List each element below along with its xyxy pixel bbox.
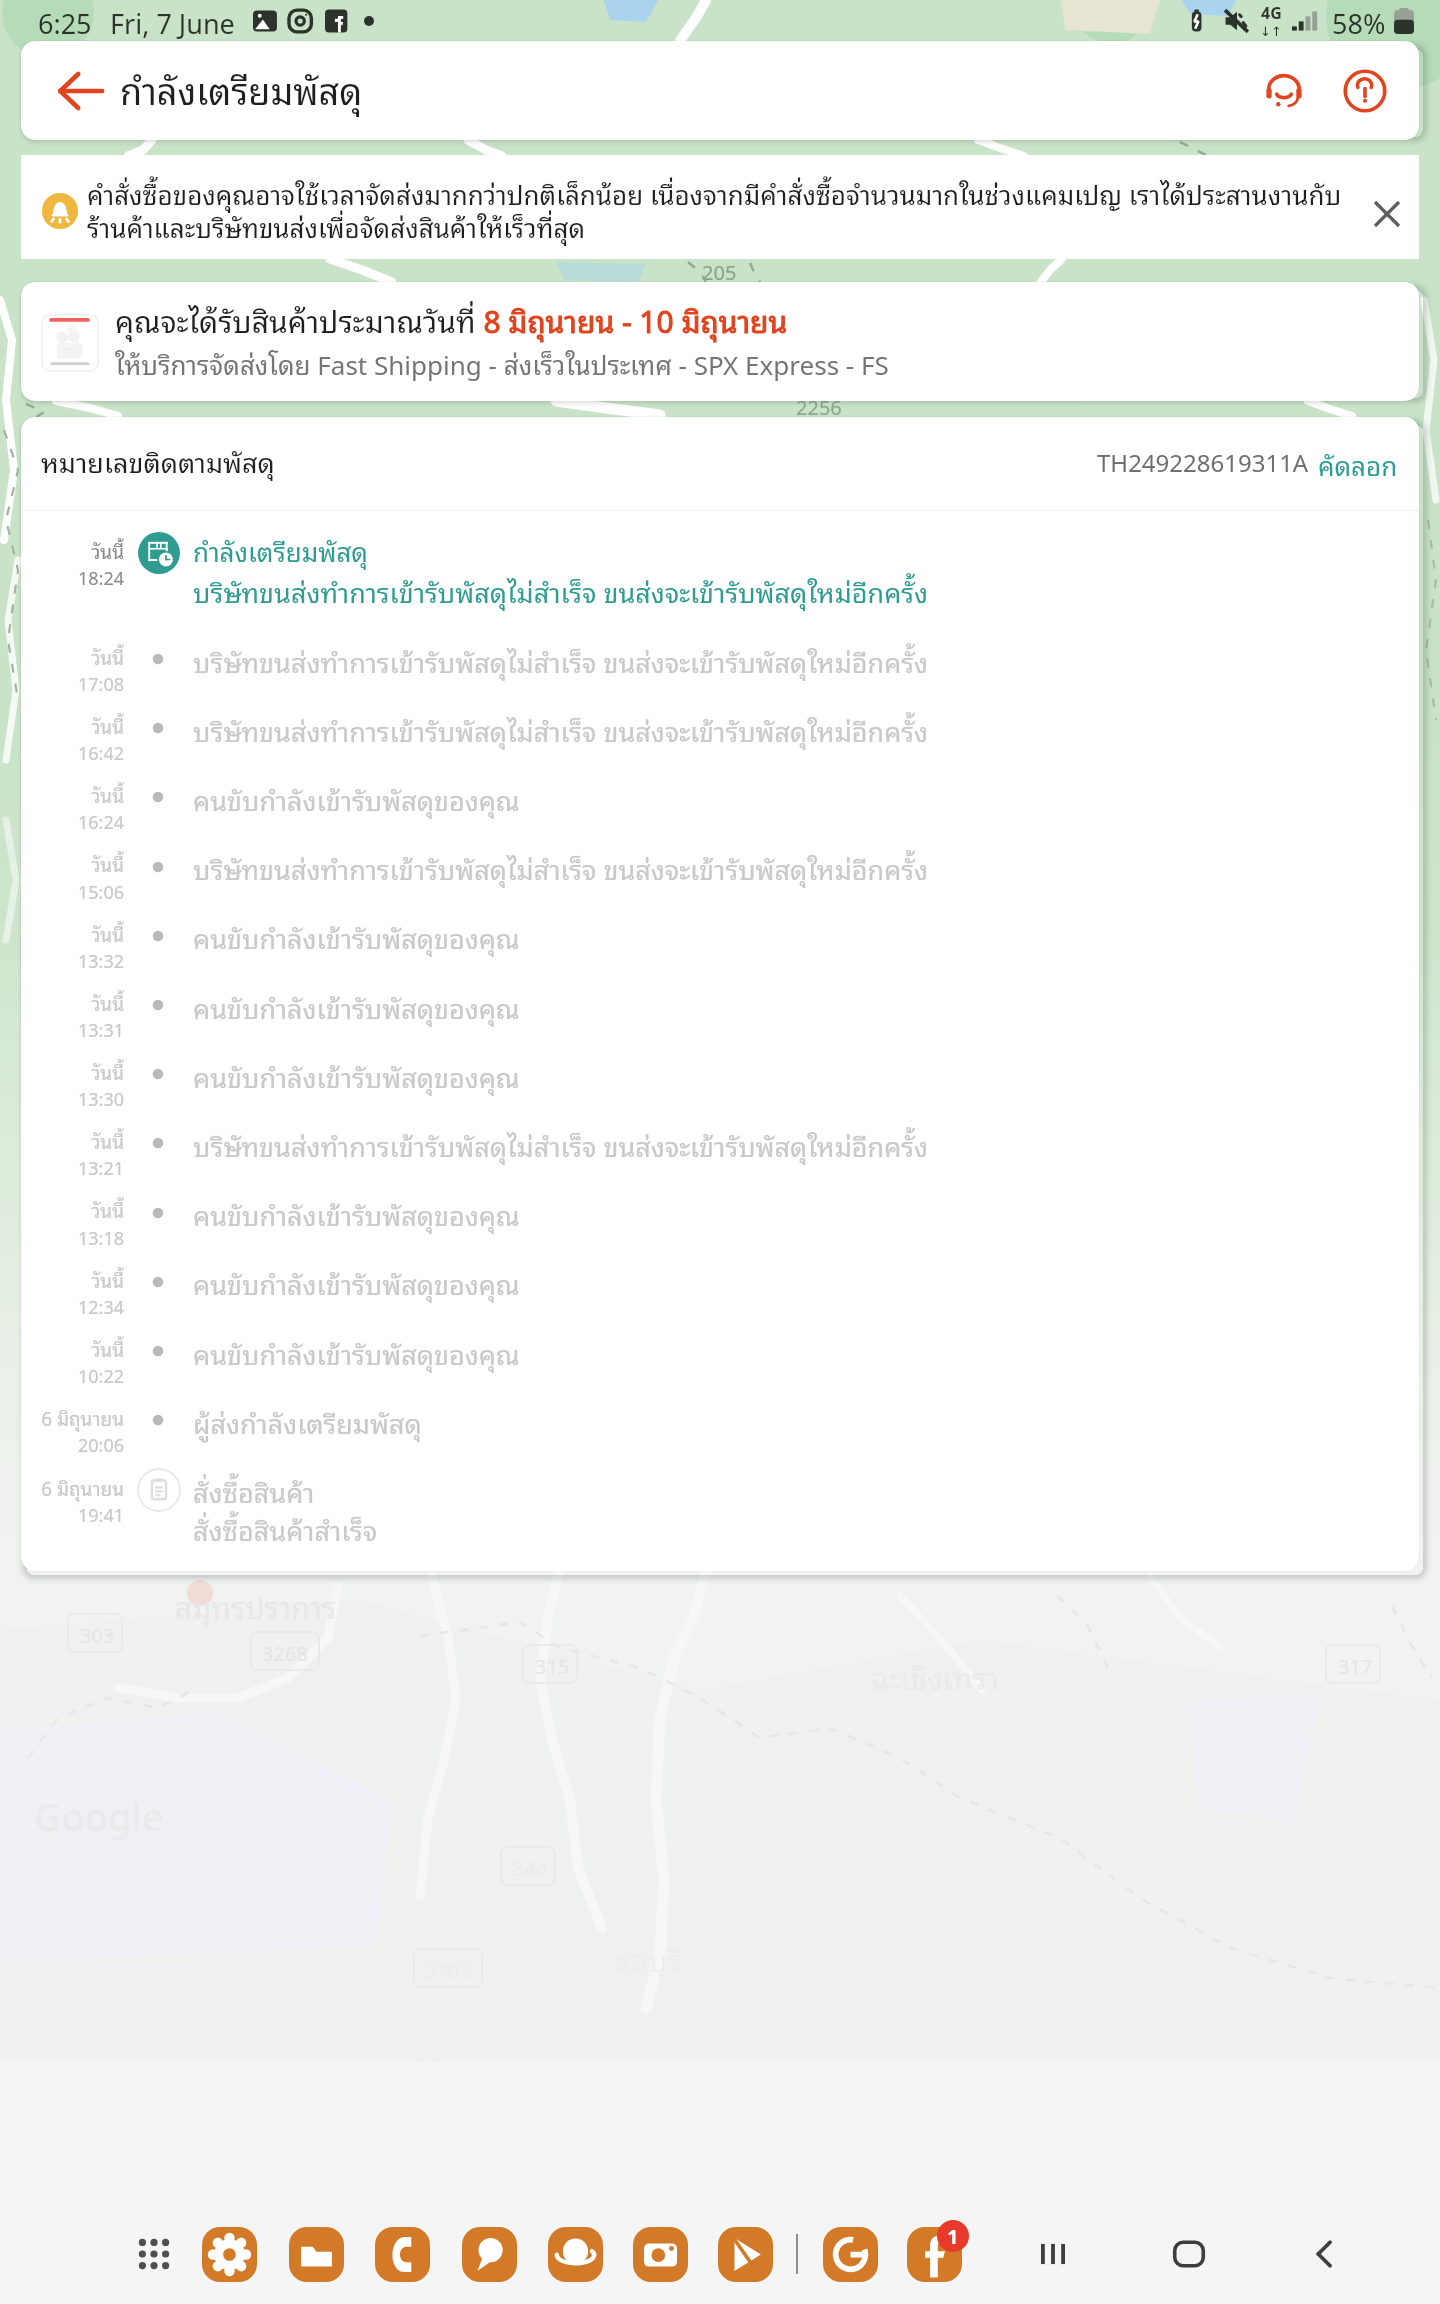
staticText: 6 มิถุนายน: [21, 1402, 124, 1432]
button[interactable]: App: [446, 2211, 532, 2297]
staticText: 1: [947, 2223, 959, 2250]
staticText: 58%: [1332, 0, 1386, 41]
staticText: 10:22: [21, 1360, 124, 1389]
staticText: 13:31: [21, 1014, 124, 1043]
button[interactable]: คัดลอก: [1308, 433, 1408, 495]
staticText: 317: [1338, 1649, 1373, 1681]
button[interactable]: App: [702, 2211, 788, 2297]
staticText: ให้บริการจัดส่งโดย Fast Shipping - ส่งเร…: [115, 342, 889, 384]
staticText: วันนี้: [21, 1125, 124, 1155]
staticText: 2256: [796, 390, 842, 422]
staticText: วันนี้: [21, 987, 124, 1017]
staticText: 19:41: [21, 1499, 124, 1528]
staticText: วันนี้: [21, 641, 124, 671]
button[interactable]: App: [359, 2211, 445, 2297]
staticText: วันนี้: [21, 918, 124, 948]
staticText: 15:06: [21, 876, 124, 905]
staticText: 13:21: [21, 1152, 124, 1181]
staticText: คนขับกำลังเข้ารับพัสดุของคุณ: [193, 1261, 520, 1304]
staticText: 3268: [262, 1636, 308, 1668]
button[interactable]: Recent apps: [1011, 2212, 1095, 2296]
button[interactable]: App: [617, 2211, 703, 2297]
button[interactable]: Back: [1283, 2212, 1367, 2296]
staticText: 20:06: [21, 1429, 124, 1458]
staticText: วันนี้: [21, 779, 124, 809]
staticText: 12:34: [21, 1291, 124, 1320]
staticText: กำลังเตรียมพัสดุ: [193, 529, 368, 571]
staticText: สั่งซื้อสินค้าสำเร็จ: [193, 1507, 378, 1550]
staticText: วันนี้: [21, 535, 124, 565]
staticText: 18:24: [21, 562, 124, 591]
staticText: บริษัทขนส่งทำการเข้ารับพัสดุไม่สำเร็จ ขน…: [193, 639, 929, 682]
staticText: บริษัทขนส่งทำการเข้ารับพัสดุไม่สำเร็จ ขน…: [193, 708, 929, 751]
staticText: คนขับกำลังเข้ารับพัสดุของคุณ: [193, 1331, 520, 1374]
staticText: คนขับกำลังเข้ารับพัสดุของคุณ: [193, 915, 520, 958]
staticText: 16:42: [21, 737, 124, 766]
staticText: วันนี้: [21, 1264, 124, 1294]
button[interactable]: คำสั่งซื้อของคุณอาจใช้เวลาจัดส่งมากกว่าป…: [21, 155, 1419, 259]
staticText: คัดลอก: [1318, 443, 1398, 485]
staticText: หมายเลขติดตามพัสดุ: [41, 439, 275, 482]
button[interactable]: All apps: [123, 2223, 185, 2285]
staticText: กำลังเตรียมพัสดุ: [120, 60, 363, 118]
staticText: ↓↑: [1260, 24, 1282, 39]
staticText: บริษัทขนส่งทำการเข้ารับพัสดุไม่สำเร็จ ขน…: [193, 569, 929, 612]
staticText: คนขับกำลังเข้ารับพัสดุของคุณ: [193, 985, 520, 1028]
staticText: คนขับกำลังเข้ารับพัสดุของคุณ: [193, 1192, 520, 1235]
staticText: TH249228619311A: [1097, 442, 1309, 480]
button[interactable]: Home: [1147, 2212, 1231, 2296]
button[interactable]: App: [807, 2211, 893, 2297]
staticText: สมุทรปราการ: [175, 1581, 337, 1629]
staticText: 315: [535, 1649, 570, 1681]
staticText: ผู้ส่งกำลังเตรียมพัสดุ: [193, 1400, 422, 1443]
staticText: 17:08: [21, 668, 124, 697]
staticText: สั่งซื้อสินค้า: [193, 1469, 315, 1512]
button[interactable]: App: [532, 2211, 618, 2297]
staticText: คำสั่งซื้อของคุณอาจใช้เวลาจัดส่งมากกว่าป…: [87, 172, 1365, 247]
staticText: วันนี้: [21, 1056, 124, 1086]
staticText: 13:18: [21, 1222, 124, 1251]
button[interactable]: App: [186, 2211, 272, 2297]
staticText: 13:30: [21, 1083, 124, 1112]
staticText: 303: [80, 1618, 115, 1650]
button[interactable]: Back: [31, 41, 131, 140]
staticText: วันนี้: [21, 848, 124, 878]
button[interactable]: App: [273, 2211, 359, 2297]
button[interactable]: App: [891, 2211, 977, 2297]
button[interactable]: Close: [1345, 172, 1429, 256]
staticText: วันนี้: [21, 1194, 124, 1224]
button[interactable]: Help: [1317, 43, 1413, 139]
staticText: 205: [702, 255, 737, 287]
staticText: 6:25: [38, 0, 92, 41]
staticText: Fri, 7 June: [110, 0, 235, 41]
staticText: คนขับกำลังเข้ารับพัสดุของคุณ: [193, 1054, 520, 1097]
staticText: 6 มิถุนายน: [21, 1472, 124, 1502]
staticText: 13:32: [21, 945, 124, 974]
staticText: วันนี้: [21, 1333, 124, 1363]
button[interactable]: หมายเลขติดตามพัสดุ: [21, 417, 1419, 510]
staticText: ชลบุรี: [614, 1934, 682, 1982]
staticText: 16:24: [21, 806, 124, 835]
staticText: วันนี้: [21, 710, 124, 740]
staticText: บริษัทขนส่งทำการเข้ารับพัสดุไม่สำเร็จ ขน…: [193, 1123, 929, 1166]
staticText: บริษัทขนส่งทำการเข้ารับพัสดุไม่สำเร็จ ขน…: [193, 846, 929, 889]
button[interactable]: Customer support: [1236, 43, 1332, 139]
staticText: คนขับกำลังเข้ารับพัสดุของคุณ: [193, 777, 520, 820]
staticText: คุณจะได้รับสินค้าประมาณวันที่ 8 มิถุนายน…: [115, 295, 788, 343]
staticText: 4G: [1261, 2, 1282, 24]
button[interactable]: คุณจะได้รับสินค้าประมาณวันที่ 8 มิถุนายน…: [21, 282, 1419, 401]
staticText: Google: [34, 1790, 164, 1842]
